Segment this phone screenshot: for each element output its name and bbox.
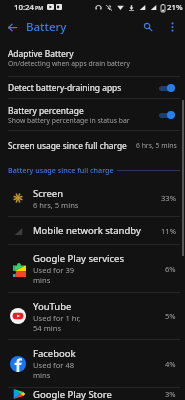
staticText: On/detecting when apps drain battery xyxy=(8,59,130,68)
staticText: Used for 1 hr, 54 mins xyxy=(33,313,85,333)
staticText: 33% xyxy=(161,193,176,203)
staticText: Facebook xyxy=(33,347,76,360)
button[interactable]: Search xyxy=(136,15,160,39)
staticText: 4% xyxy=(165,359,176,369)
button[interactable]: Google Play services xyxy=(0,245,185,292)
staticText: Screen xyxy=(33,187,64,200)
staticText: Google Play services xyxy=(33,252,124,265)
staticText: Used for 39 mins xyxy=(33,265,85,285)
button[interactable]: Google Play Store xyxy=(0,388,185,400)
button[interactable]: Facebook xyxy=(0,340,185,387)
staticText: Battery percentage xyxy=(8,105,84,116)
staticText: 11% xyxy=(161,226,176,236)
button[interactable]: Detect battery-draining apps xyxy=(0,77,185,98)
staticText: Used for 48 mins xyxy=(33,360,85,380)
staticText: 6 hrs, 5 mins xyxy=(33,200,85,210)
staticText: YouTube xyxy=(33,300,72,313)
button[interactable]: Adaptive Battery xyxy=(0,40,185,76)
staticText: 3% xyxy=(165,389,176,399)
staticText: 5% xyxy=(165,311,176,321)
staticText: Mobile network standby xyxy=(33,224,141,237)
button[interactable]: Screen usage since full charge xyxy=(0,131,185,160)
staticText: Show battery percentage in status bar xyxy=(8,116,130,125)
button[interactable]: YouTube xyxy=(0,293,185,339)
staticText: PM xyxy=(35,4,44,11)
staticText: 10:24 xyxy=(14,2,34,13)
button[interactable]: More options xyxy=(160,15,184,39)
staticText: Screen usage since full charge xyxy=(8,140,127,151)
staticText: 21% xyxy=(167,2,183,13)
staticText: Detect battery-draining apps xyxy=(8,82,122,93)
button[interactable]: Battery percentage xyxy=(0,99,185,130)
staticText: Battery usage since full charge xyxy=(8,165,114,175)
staticText: Battery xyxy=(26,19,67,35)
button[interactable]: Back xyxy=(0,15,24,39)
button[interactable]: Mobile network standby xyxy=(0,217,185,244)
staticText: Adaptive Battery xyxy=(8,48,74,59)
staticText: 6 hrs, 5 mins xyxy=(136,141,177,150)
button[interactable]: Screen xyxy=(0,180,185,216)
staticText: 6% xyxy=(165,264,176,274)
staticText: Google Play Store xyxy=(33,388,112,400)
